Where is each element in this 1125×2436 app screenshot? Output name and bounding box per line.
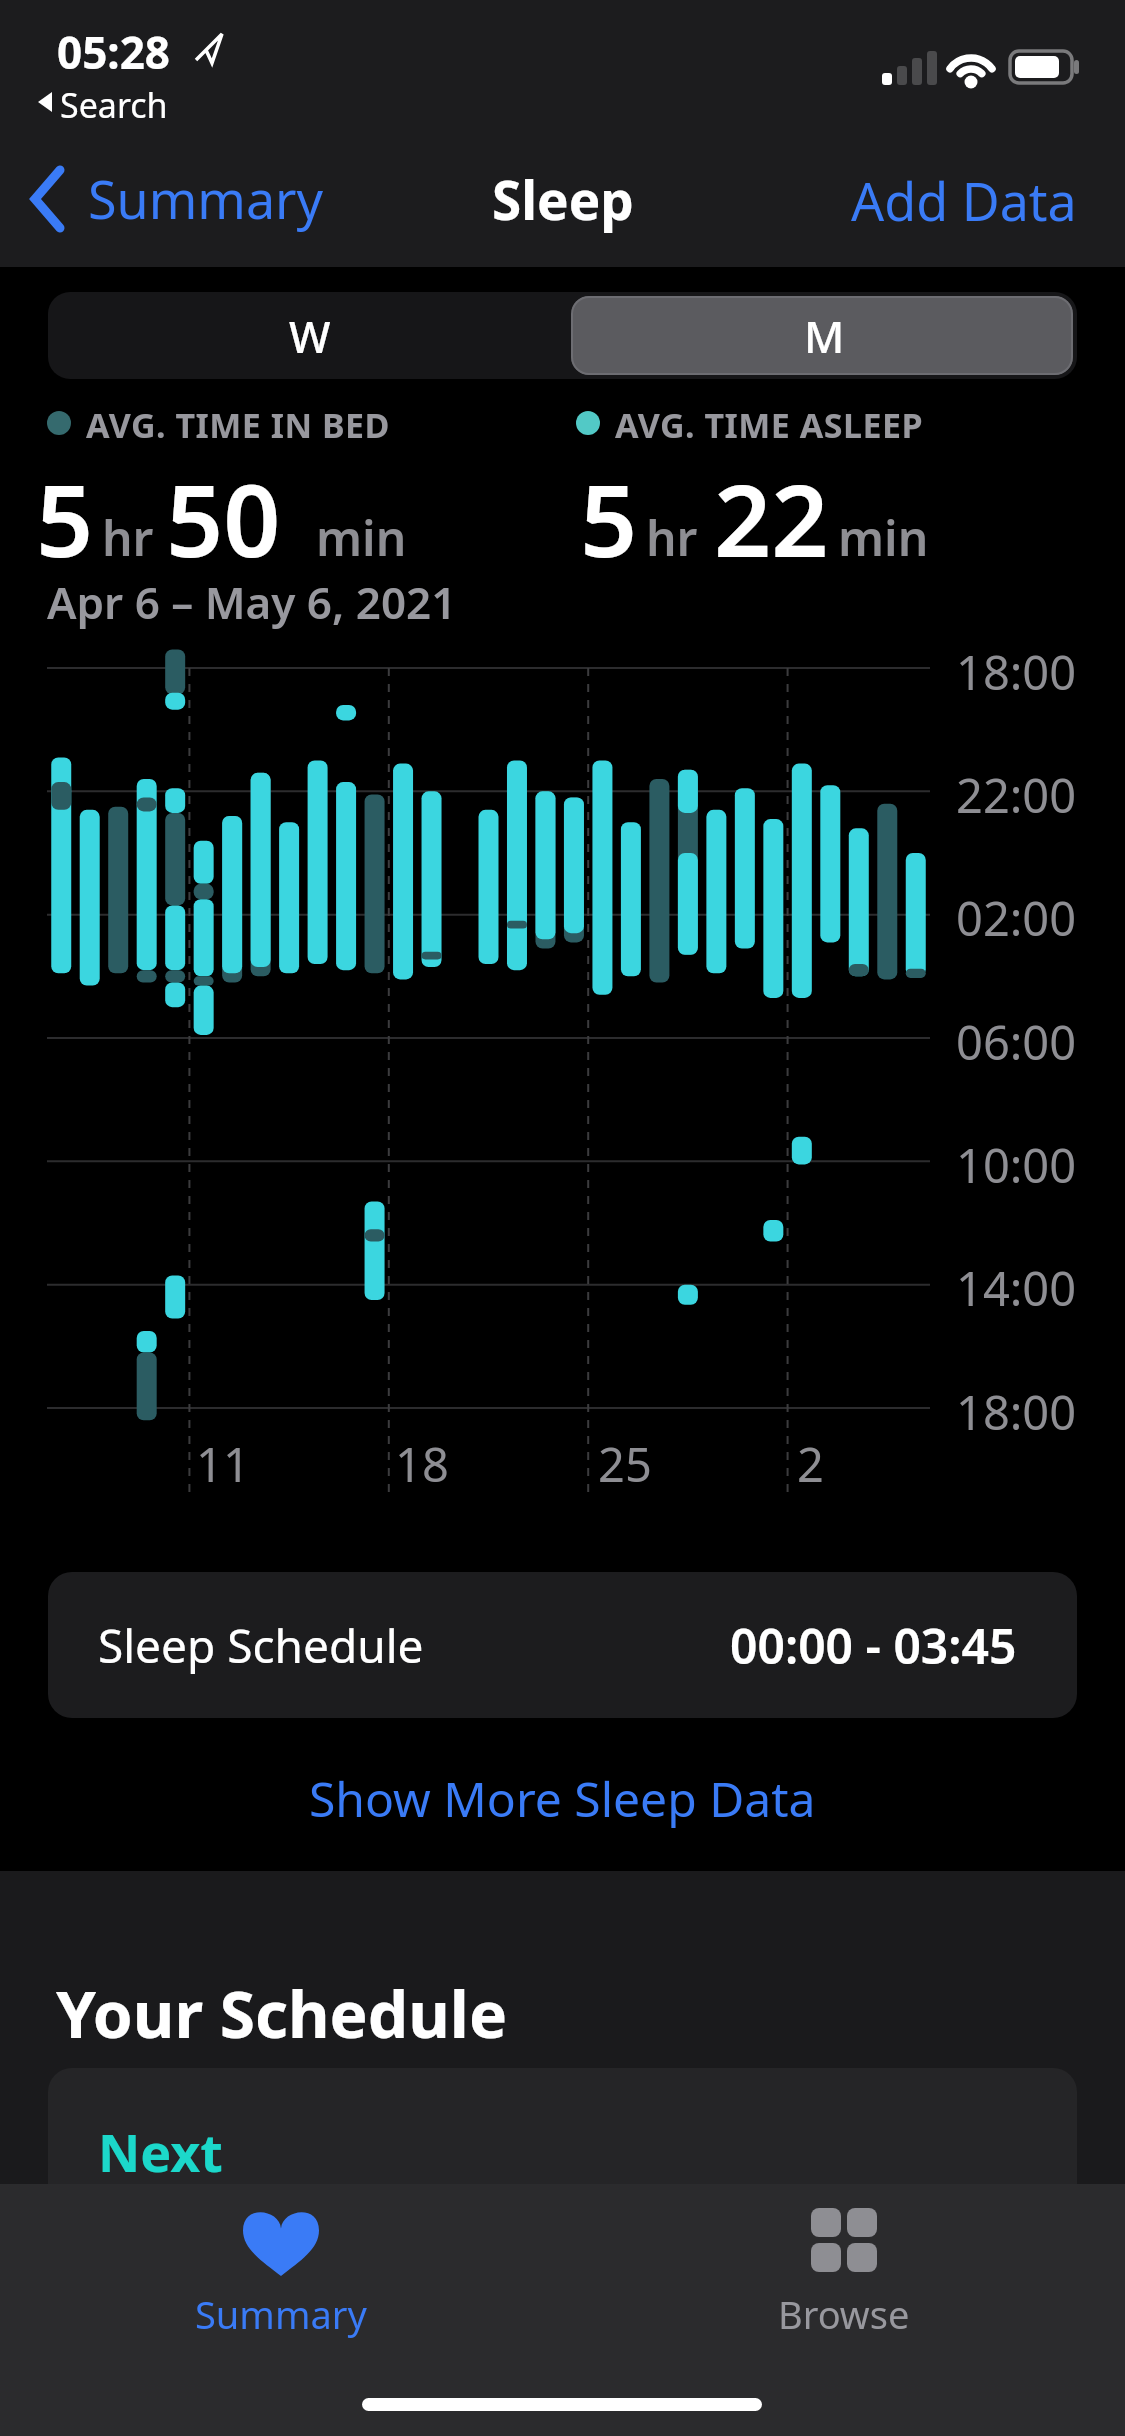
staticText: 18 — [395, 1432, 449, 1496]
button[interactable]: Next — [48, 2068, 1077, 2218]
staticText: 11 — [196, 1432, 250, 1496]
button[interactable]: M — [571, 292, 1077, 379]
staticText: 50 — [166, 450, 281, 586]
staticText: 18:00 — [956, 1380, 1077, 1444]
staticText: Browse — [778, 2288, 910, 2340]
staticText: 06:00 — [956, 1010, 1077, 1074]
staticText: Summary — [88, 163, 324, 234]
staticText: 10:00 — [956, 1133, 1077, 1197]
staticText: hr — [646, 505, 698, 570]
staticText: 25 — [598, 1432, 652, 1496]
staticText: 18:00 — [956, 640, 1077, 704]
staticText: AVG. TIME IN BED — [86, 402, 390, 448]
staticText: 5 — [580, 450, 638, 586]
staticText: 5 — [36, 450, 94, 586]
staticText: 22 — [714, 450, 829, 586]
button[interactable]: Browse — [734, 2196, 954, 2346]
staticText: 02:00 — [956, 886, 1077, 950]
staticText: M — [804, 306, 845, 366]
staticText: 22:00 — [956, 763, 1077, 827]
staticText: Summary — [195, 2288, 367, 2340]
staticText: Search — [60, 82, 168, 128]
button[interactable]: Sleep Schedule — [48, 1572, 1077, 1718]
staticText: Sleep — [492, 163, 634, 235]
button[interactable]: W — [48, 292, 571, 379]
staticText: AVG. TIME ASLEEP — [615, 402, 924, 448]
button[interactable]: Summary — [20, 155, 320, 245]
staticText: 05:28 — [57, 22, 171, 82]
staticText: min — [316, 505, 407, 570]
staticText: 2 — [797, 1432, 824, 1496]
staticText: Apr 6 – May 6, 2021 — [47, 572, 457, 632]
button[interactable]: Show More Sleep Data — [309, 1766, 816, 1831]
staticText: 00:00 - 03:45 — [730, 1613, 1017, 1678]
button[interactable]: Add Data — [851, 165, 1077, 236]
staticText: hr — [102, 505, 154, 570]
button[interactable]: Summary — [171, 2196, 391, 2346]
staticText: W — [289, 306, 331, 366]
staticText: Your Schedule — [56, 1970, 508, 2057]
staticText: Next — [98, 2116, 223, 2187]
staticText: Sleep Schedule — [98, 1614, 424, 1677]
staticText: min — [838, 505, 929, 570]
staticText: 14:00 — [956, 1256, 1077, 1320]
